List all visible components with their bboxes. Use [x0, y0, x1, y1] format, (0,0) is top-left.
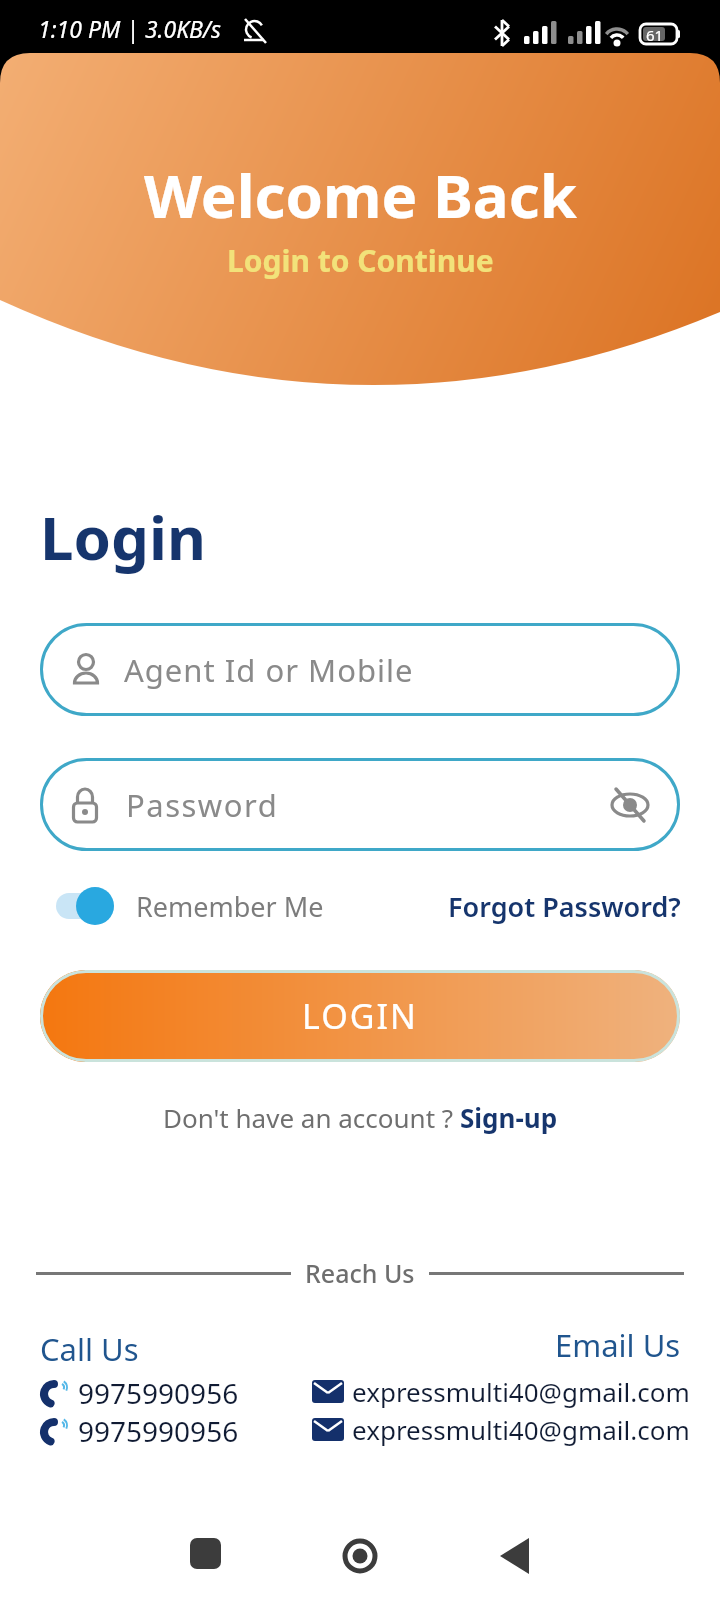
staticText: expressmulti40@gmail.com [352, 1412, 690, 1447]
staticText: 1:10 PM | 3.0KB/s [38, 13, 221, 44]
staticText: Reach Us [305, 1256, 415, 1290]
button[interactable]: 9975990956 [40, 1374, 239, 1412]
staticText: 9975990956 [78, 1412, 239, 1450]
staticText: Login to Continue [227, 240, 494, 281]
staticText: Password [126, 784, 279, 826]
button[interactable]: expressmulti40@gmail.com [312, 1412, 690, 1447]
staticText: Email Us [555, 1324, 681, 1366]
staticText: Welcome Back [144, 154, 577, 236]
staticText: Call Us [40, 1328, 139, 1370]
staticText: 61 [646, 25, 664, 45]
staticText: Don't have an account ? [163, 1100, 460, 1135]
button[interactable]: Remember Me [56, 878, 324, 934]
button[interactable]: Forgot Password? [448, 888, 681, 925]
button[interactable]: Sign-up [460, 1100, 558, 1135]
button[interactable]: expressmulti40@gmail.com [312, 1374, 690, 1409]
staticText: expressmulti40@gmail.com [352, 1374, 690, 1409]
staticText: 9975990956 [78, 1374, 239, 1412]
staticText: LOGIN [302, 993, 418, 1039]
button[interactable]: Agent Id or Mobile [40, 623, 680, 716]
button[interactable]: Password [40, 758, 680, 851]
button[interactable] [610, 785, 650, 825]
staticText: Agent Id or Mobile [124, 649, 414, 691]
button[interactable]: LOGIN [40, 970, 680, 1062]
staticText: Remember Me [136, 888, 324, 925]
button[interactable]: 9975990956 [40, 1412, 239, 1450]
staticText: Login [40, 496, 206, 578]
